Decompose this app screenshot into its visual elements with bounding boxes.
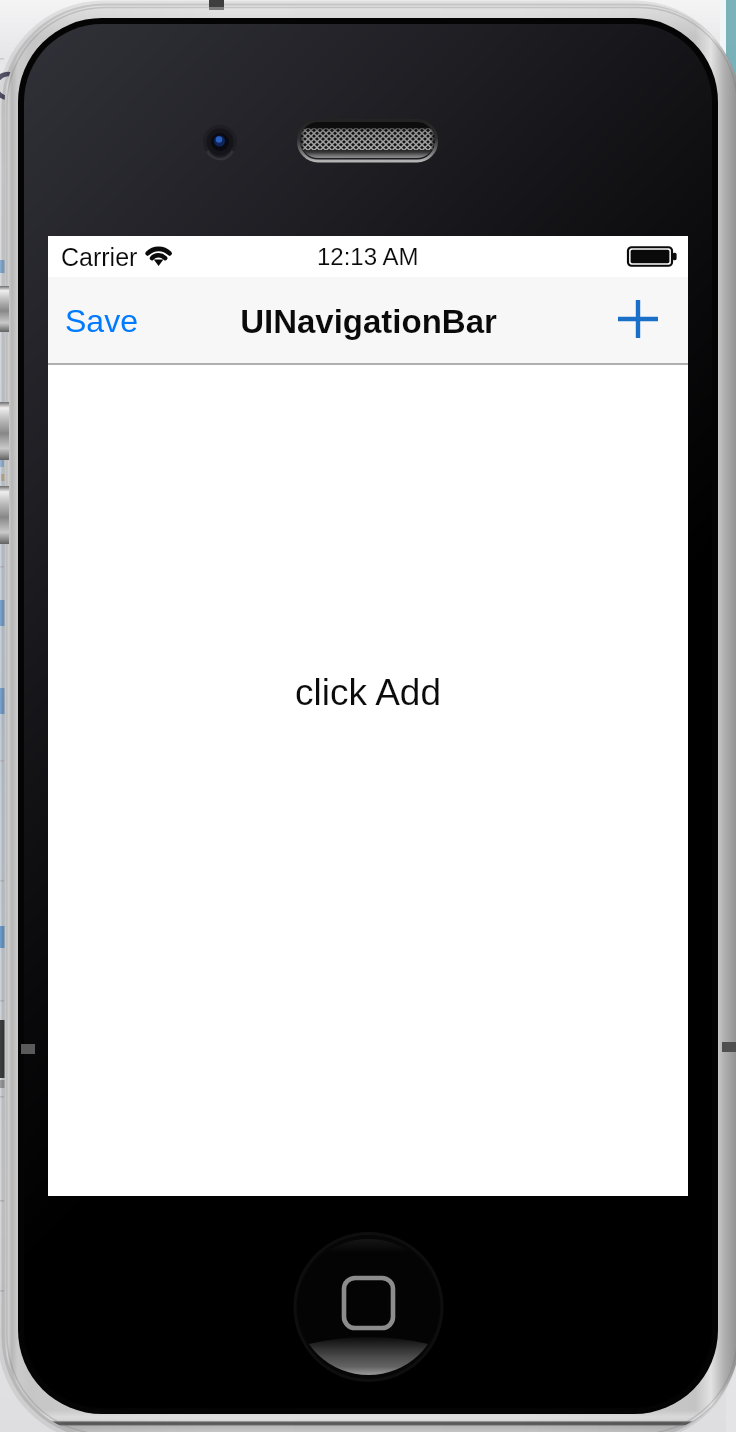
staticText: click Add: [295, 672, 442, 713]
button[interactable]: Add: [588, 277, 688, 365]
staticText: UINavigationBar: [240, 303, 497, 340]
button[interactable]: Save: [48, 277, 154, 365]
staticText: 12:13 AM: [317, 243, 419, 270]
staticText: Save: [65, 303, 138, 339]
staticText: Carrier: [61, 243, 138, 271]
